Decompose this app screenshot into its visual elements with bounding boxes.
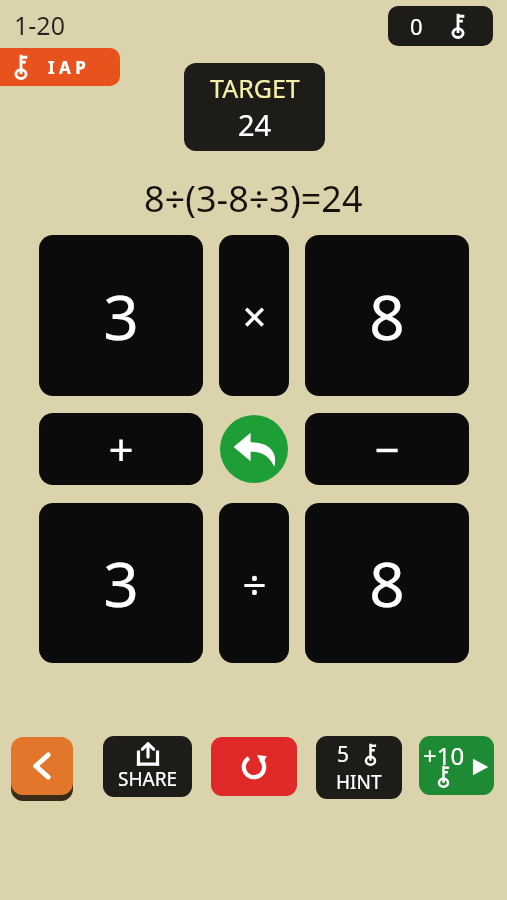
button[interactable]: × — [219, 235, 289, 396]
staticText: 3 — [103, 274, 139, 358]
button[interactable]: 3 — [39, 235, 203, 396]
button[interactable]: SHARE — [103, 736, 192, 797]
button[interactable]: In app purchase — [0, 48, 120, 86]
staticText: + — [108, 419, 134, 479]
staticText: 0 — [410, 11, 423, 41]
button[interactable]: Watch ad for 10 keys — [419, 736, 494, 795]
staticText: 24 — [238, 105, 272, 144]
staticText: 8 — [369, 274, 405, 358]
staticText: I A P — [48, 56, 86, 79]
button[interactable]: 5 — [316, 736, 402, 799]
staticText: 8 — [369, 541, 405, 625]
button[interactable]: − — [305, 413, 469, 485]
button[interactable]: Keys — [388, 6, 493, 46]
staticText: +10 — [423, 739, 465, 772]
staticText: × — [242, 287, 267, 344]
staticText: 3 — [103, 541, 139, 625]
staticText: SHARE — [118, 766, 178, 792]
button[interactable]: Back — [11, 737, 73, 795]
button[interactable]: Restart — [211, 737, 297, 796]
staticText: 5 — [337, 740, 350, 769]
button[interactable]: 8 — [305, 503, 469, 663]
staticText: HINT — [336, 769, 382, 795]
staticText: ÷ — [242, 555, 267, 612]
staticText: − — [374, 419, 400, 479]
button[interactable]: 3 — [39, 503, 203, 663]
button[interactable]: 8 — [305, 235, 469, 396]
staticText: 8÷(3-8÷3)=24 — [144, 174, 363, 223]
staticText: 1-20 — [14, 8, 65, 42]
button[interactable]: + — [39, 413, 203, 485]
button[interactable]: Undo — [220, 415, 288, 483]
button[interactable]: ÷ — [219, 503, 289, 663]
staticText: TARGET — [210, 71, 300, 105]
